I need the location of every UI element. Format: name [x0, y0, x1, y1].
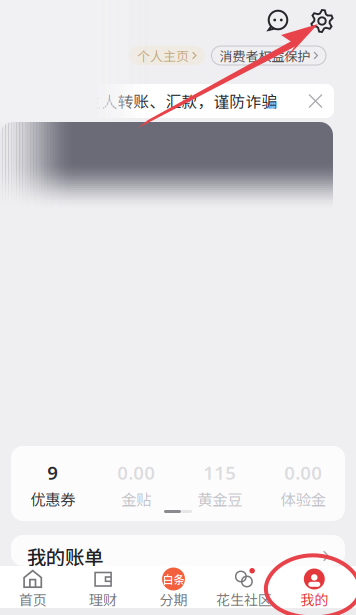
- staticText: 消费者权益保护: [219, 46, 310, 65]
- button[interactable]: 9: [11, 460, 94, 510]
- staticText: 我的: [300, 589, 328, 609]
- staticText: 黄金豆: [197, 488, 242, 510]
- staticText: 我的账单: [27, 542, 103, 570]
- button[interactable]: 白条: [138, 566, 209, 608]
- staticText: 体验金: [281, 488, 326, 510]
- staticText: 花生社区: [216, 589, 272, 609]
- staticText: 分期: [159, 589, 187, 609]
- staticText: 0.00: [284, 460, 322, 485]
- staticText: 金贴: [121, 488, 151, 510]
- staticText: 首页: [19, 589, 47, 609]
- staticText: 0.00: [117, 460, 155, 485]
- staticText: 优惠券: [30, 488, 75, 510]
- staticText: 理财: [89, 589, 117, 609]
- button[interactable]: Close banner: [297, 84, 334, 118]
- button[interactable]: 115: [178, 460, 261, 510]
- staticText: 9: [47, 460, 58, 485]
- button[interactable]: 消费者权益保护: [211, 46, 326, 65]
- button[interactable]: 0.00: [261, 460, 345, 510]
- button[interactable]: 0.00: [94, 460, 178, 510]
- staticText: 白条: [162, 571, 184, 587]
- staticText: 115: [203, 460, 236, 485]
- button[interactable]: 首页: [0, 566, 68, 608]
- button[interactable]: 理财: [68, 566, 138, 608]
- button[interactable]: 个人主页: [129, 46, 204, 65]
- button[interactable]: 花生社区: [209, 566, 279, 608]
- button[interactable]: Messages: [256, 0, 300, 42]
- staticText: 个人主页: [137, 46, 189, 65]
- button[interactable]: 我的: [279, 566, 349, 608]
- button[interactable]: Settings: [300, 0, 344, 42]
- button[interactable]: 我的账单: [11, 535, 345, 566]
- staticText: 陌生人转账、汇款，谨防诈骗: [69, 90, 277, 112]
